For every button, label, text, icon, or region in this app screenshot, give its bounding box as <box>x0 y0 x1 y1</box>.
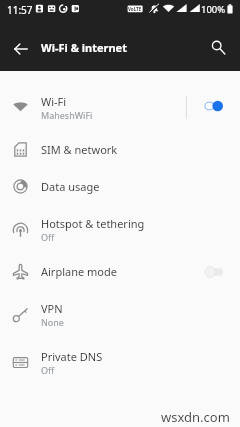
button[interactable]: Private DNS <box>0 338 240 386</box>
staticText: VoLTE <box>128 6 142 12</box>
staticText: 100% <box>201 3 226 16</box>
staticText: Data usage <box>41 179 100 194</box>
button[interactable]: Wi-Fi <box>0 83 240 131</box>
staticText: Private DNS <box>41 349 103 364</box>
staticText: Hotspot & tethering <box>41 216 145 231</box>
staticText: wsxdn.com <box>161 408 230 426</box>
button[interactable]: VPN <box>0 290 240 338</box>
staticText: Off <box>41 231 55 243</box>
staticText: SIM & network <box>41 142 118 157</box>
staticText: Off <box>41 364 55 376</box>
staticText: None <box>41 316 64 328</box>
button[interactable]: Back <box>7 35 34 62</box>
staticText: 11:57 <box>7 3 33 17</box>
staticText: Airplane mode <box>41 264 117 279</box>
staticText: Wi-Fi & internet <box>41 40 127 55</box>
button[interactable]: Airplane mode <box>0 253 240 290</box>
staticText: Wi-Fi <box>41 94 67 109</box>
staticText: MaheshWiFi <box>41 109 93 121</box>
button[interactable]: Data usage <box>0 168 240 205</box>
button[interactable]: Hotspot & tethering <box>0 205 240 253</box>
button[interactable]: Search <box>203 35 230 62</box>
staticText: VPN <box>41 301 63 316</box>
button[interactable]: SIM & network <box>0 131 240 168</box>
